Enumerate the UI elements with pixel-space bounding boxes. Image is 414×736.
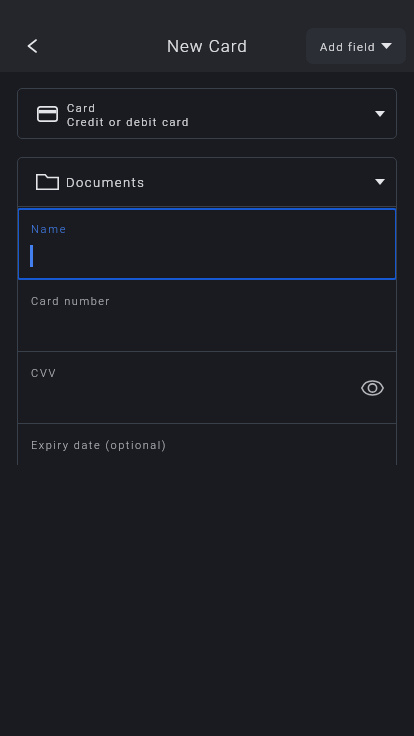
button[interactable]: Card number: [17, 280, 397, 351]
button[interactable]: Card: [17, 88, 397, 139]
staticText: New Card: [167, 36, 248, 56]
staticText: Add field: [320, 40, 376, 53]
button[interactable]: CVV: [17, 352, 397, 423]
button[interactable]: Documents: [17, 157, 397, 206]
staticText: Credit or debit card: [67, 116, 190, 129]
button[interactable]: Back: [14, 28, 50, 64]
staticText: Documents: [66, 175, 146, 190]
staticText: Card number: [31, 295, 111, 308]
staticText: Card: [67, 102, 97, 115]
button[interactable]: Show CVV: [355, 371, 389, 405]
button[interactable]: Name: [17, 208, 397, 280]
staticText: Name: [31, 223, 68, 236]
button[interactable]: Add field: [306, 28, 406, 64]
staticText: CVV: [31, 367, 58, 380]
button[interactable]: Expiry date (optional): [17, 424, 397, 465]
staticText: Expiry date (optional): [31, 439, 167, 452]
